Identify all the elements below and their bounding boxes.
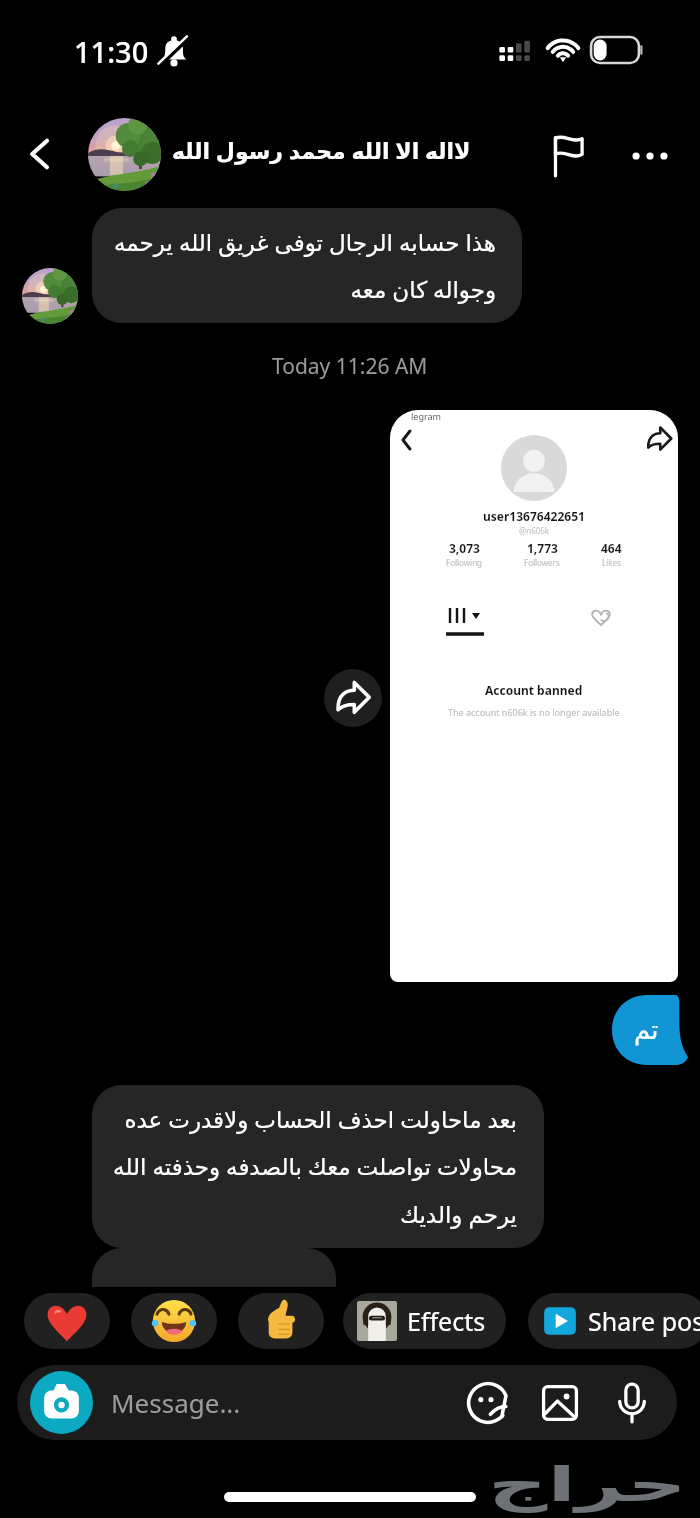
staticText: Message... bbox=[111, 1385, 241, 1420]
button[interactable]: Gallery bbox=[533, 1376, 587, 1430]
button[interactable]: Effects bbox=[343, 1293, 506, 1349]
staticText: Effects bbox=[407, 1304, 486, 1338]
staticText: Following bbox=[446, 557, 483, 568]
staticText: 1,773 bbox=[527, 540, 558, 556]
button[interactable]: Camera bbox=[30, 1371, 93, 1434]
staticText: Likes bbox=[602, 557, 621, 568]
button[interactable] bbox=[88, 118, 161, 191]
staticText: بعد ماحاولت احذف الحساب ولاقدرت عده محاو… bbox=[113, 1103, 517, 1230]
button[interactable]: Stickers bbox=[461, 1376, 515, 1430]
staticText: هذا حسابه الرجال توفى غريق الله يرحمه وج… bbox=[113, 226, 496, 305]
button[interactable]: Forward bbox=[324, 669, 382, 727]
staticText: 11:30 bbox=[74, 32, 149, 71]
button[interactable]: تم bbox=[612, 993, 688, 1067]
button[interactable] bbox=[22, 268, 78, 324]
button[interactable]: Voice message bbox=[605, 1376, 659, 1430]
staticText: لااله الا الله محمد رسول الله bbox=[172, 135, 471, 165]
staticText: Account banned bbox=[485, 682, 583, 698]
button[interactable]: React with laughing face bbox=[131, 1293, 217, 1349]
staticText: The account n606k is no longer available bbox=[448, 706, 620, 718]
staticText: تم bbox=[634, 1015, 659, 1045]
staticText: 464 bbox=[601, 540, 622, 556]
button[interactable]: React with thumbs up bbox=[238, 1293, 324, 1349]
button[interactable]: Report bbox=[542, 128, 598, 184]
button[interactable]: Back bbox=[14, 129, 64, 179]
button[interactable]: لااله الا الله محمد رسول الله bbox=[172, 135, 471, 165]
staticText: legram bbox=[411, 410, 441, 422]
button[interactable]: بعد ماحاولت احذف الحساب ولاقدرت عده محاو… bbox=[92, 1085, 544, 1248]
staticText: Followers bbox=[524, 557, 560, 568]
button[interactable]: legram bbox=[390, 410, 678, 982]
button[interactable]: React with heart bbox=[24, 1293, 110, 1349]
staticText: user13676422651 bbox=[483, 508, 585, 524]
staticText: حراج bbox=[488, 1456, 687, 1512]
staticText: @n606k bbox=[519, 525, 550, 536]
button[interactable]: هذا حسابه الرجال توفى غريق الله يرحمه وج… bbox=[92, 208, 522, 323]
staticText: Share post bbox=[588, 1304, 700, 1338]
staticText: 3,073 bbox=[449, 540, 480, 556]
button[interactable]: More options bbox=[621, 127, 679, 185]
staticText: Today 11:26 AM bbox=[272, 352, 428, 381]
button[interactable]: Share post bbox=[528, 1293, 700, 1349]
